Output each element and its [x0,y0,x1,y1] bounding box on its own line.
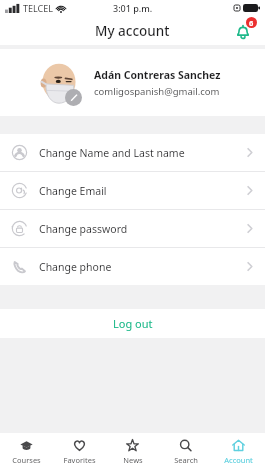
button[interactable]: News [106,433,159,471]
staticText: comligospanish@gmail.com [94,85,220,98]
staticText: Change Email [39,184,247,198]
staticText: News [123,455,143,465]
staticText: TELCEL [23,2,53,14]
button[interactable]: Search [159,433,212,471]
staticText: Change Name and Last name [39,146,247,160]
staticText: 6 [249,18,254,28]
button[interactable]: Favorites [53,433,106,471]
button[interactable]: Change phone [0,248,265,285]
staticText: Favorites [63,455,96,465]
button[interactable]: Account [212,433,265,471]
button[interactable]: Log out [0,309,265,338]
staticText: Change phone [39,260,247,274]
button[interactable]: Edit photo [65,89,82,106]
staticText: Search [174,455,198,465]
staticText: Change password [39,222,247,236]
staticText: Adán Contreras Sanchez [94,68,221,82]
button[interactable]: Notifications [231,18,257,44]
staticText: Account [224,455,253,465]
staticText: 3:01 p.m. [113,2,153,14]
button[interactable]: Edit photo [0,49,265,116]
button[interactable]: Change Name and Last name [0,134,265,171]
staticText: Log out [113,316,153,331]
button[interactable]: Change password [0,210,265,247]
staticText: Courses [12,455,41,465]
button[interactable]: Courses [0,433,53,471]
button[interactable]: Change Email [0,172,265,209]
staticText: My account [95,22,170,40]
